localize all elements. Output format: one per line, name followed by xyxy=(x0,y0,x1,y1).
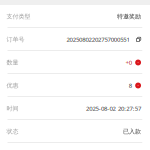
staticText: 订单号 xyxy=(6,36,24,43)
staticText: 20250802202757000551 xyxy=(66,35,129,44)
staticText: 特邀奖励 xyxy=(117,13,141,20)
staticText: 数量 xyxy=(6,59,18,66)
staticText: +0 xyxy=(125,58,132,67)
button[interactable]: 订单号 xyxy=(0,28,150,51)
button[interactable]: 状态 xyxy=(0,120,150,143)
staticText: 8 xyxy=(129,81,132,90)
button[interactable]: 支付类型 xyxy=(0,5,150,28)
button[interactable]: 时间 xyxy=(0,97,150,120)
staticText: 支付类型 xyxy=(6,13,30,20)
staticText: 状态 xyxy=(6,128,18,135)
staticText: 优惠 xyxy=(6,82,18,89)
staticText: 时间 xyxy=(6,105,18,112)
staticText: 已入款 xyxy=(123,128,141,135)
button[interactable]: 优惠 xyxy=(0,74,150,97)
staticText: 2025-08-02 20:27:57 xyxy=(86,104,141,113)
button[interactable]: 数量 xyxy=(0,51,150,74)
